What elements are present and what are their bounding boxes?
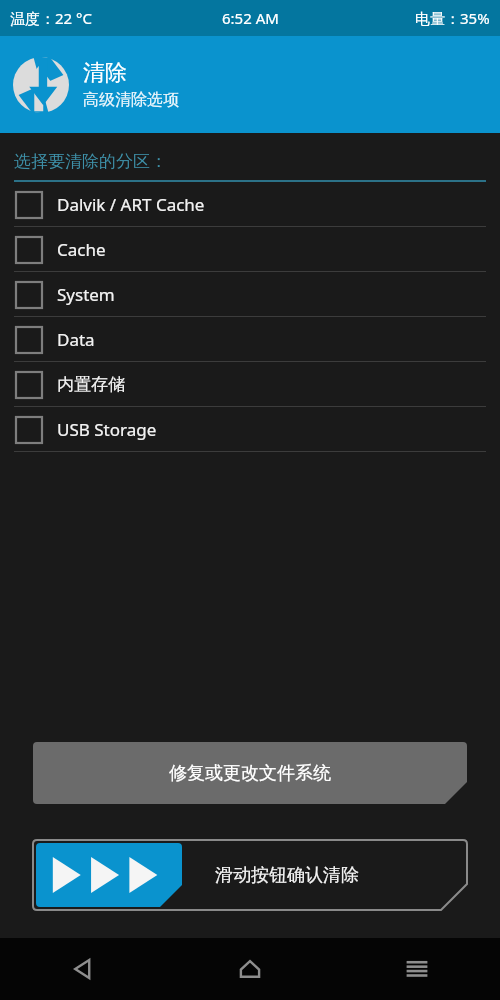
staticText: 滑动按钮确认清除 [215,864,359,887]
staticText: 6:52 AM [222,8,279,28]
button[interactable]: 滑动按钮确认清除 [33,840,467,910]
staticText: 内置存储 [57,374,125,395]
staticText: Dalvik / ART Cache [57,193,205,216]
button[interactable]: Dalvik / ART Cache [0,182,500,227]
staticText: 电量：35% [415,8,490,28]
button[interactable]: 修复或更改文件系统 [33,742,467,804]
button[interactable]: 内置存储 [0,362,500,407]
button[interactable]: Home [166,938,333,1000]
staticText: System [57,283,115,306]
staticText: USB Storage [57,418,157,441]
staticText: Cache [57,238,106,261]
staticText: 高级清除选项 [83,90,179,110]
button[interactable]: USB Storage [0,407,500,452]
button[interactable]: 清除 [0,36,500,133]
button[interactable]: System [0,272,500,317]
button[interactable]: Cache [0,227,500,272]
staticText: 选择要清除的分区： [14,151,167,172]
staticText: 清除 [83,59,127,87]
staticText: 温度：22 °C [10,8,92,28]
button[interactable]: Data [0,317,500,362]
staticText: Data [57,328,95,351]
button[interactable]: Menu [333,938,500,1000]
staticText: 修复或更改文件系统 [169,762,331,785]
button[interactable]: Back [0,938,166,1000]
